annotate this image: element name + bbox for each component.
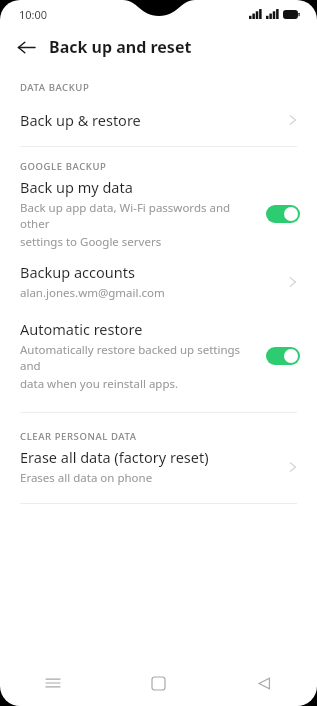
button[interactable]: Home xyxy=(105,660,211,706)
staticText: data when you reinstall apps. xyxy=(20,376,179,392)
staticText: GOOGLE BACKUP xyxy=(20,160,107,173)
staticText: 10:00 xyxy=(19,7,48,22)
staticText: alan.jones.wm@gmail.com xyxy=(20,285,165,301)
button[interactable]: Toggle on xyxy=(266,347,300,365)
staticText: Back up app data, Wi-Fi passwords and ot… xyxy=(20,200,258,232)
staticText: Automatic restore xyxy=(20,319,143,339)
staticText: Backup accounts xyxy=(20,262,135,282)
button[interactable]: Backup accounts xyxy=(0,262,317,301)
staticText: Erases all data on phone xyxy=(20,470,153,486)
button[interactable]: Erase all data (factory reset) xyxy=(0,447,317,486)
button[interactable]: Toggle on xyxy=(266,205,300,223)
button[interactable]: Back up & restore xyxy=(0,98,317,142)
staticText: CLEAR PERSONAL DATA xyxy=(20,430,137,443)
staticText: DATA BACKUP xyxy=(20,81,90,94)
button[interactable]: Recents xyxy=(0,660,105,706)
staticText: Back up my data xyxy=(20,177,133,197)
staticText: Automatically restore backed up settings… xyxy=(20,342,258,374)
button[interactable]: Back xyxy=(9,30,43,64)
button[interactable]: Back up my data xyxy=(0,177,317,250)
button[interactable]: Automatic restore xyxy=(0,319,317,392)
staticText: settings to Google servers xyxy=(20,234,162,250)
button[interactable]: Back xyxy=(211,660,317,706)
staticText: Erase all data (factory reset) xyxy=(20,447,209,467)
staticText: Back up and reset xyxy=(49,36,192,58)
staticText: Back up & restore xyxy=(20,110,287,130)
